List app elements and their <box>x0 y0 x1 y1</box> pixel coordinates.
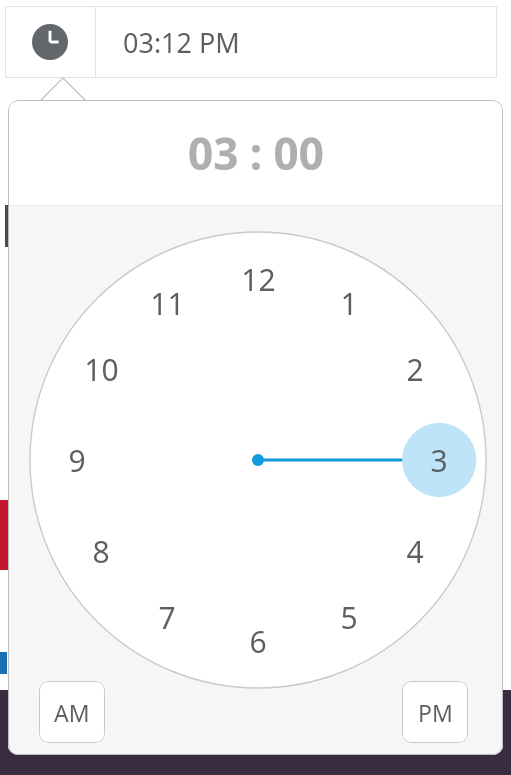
button[interactable]: Pick time <box>5 6 497 78</box>
staticText: 6 <box>249 621 267 662</box>
staticText: 3 <box>430 440 448 481</box>
staticText: 03:12 PM <box>123 24 240 61</box>
staticText: 2 <box>406 349 424 390</box>
button[interactable]: 11 <box>141 281 193 325</box>
staticText: 10 <box>84 349 119 390</box>
button[interactable]: 2 <box>389 347 441 391</box>
staticText: 03 : 00 <box>188 123 324 183</box>
other: Pick time <box>5 6 95 78</box>
button[interactable]: 9 <box>51 438 103 482</box>
staticText: PM <box>418 697 453 728</box>
button[interactable]: 8 <box>75 529 127 573</box>
button[interactable]: 1 <box>323 281 375 325</box>
staticText: 5 <box>340 597 358 638</box>
staticText: AM <box>54 697 90 728</box>
staticText: 1 <box>340 283 358 324</box>
staticText: 4 <box>406 531 424 572</box>
staticText: 8 <box>92 531 110 572</box>
button[interactable]: AM <box>39 681 105 743</box>
button[interactable]: 3 <box>413 438 465 482</box>
button[interactable]: 5 <box>323 595 375 639</box>
staticText: 12 <box>241 259 276 300</box>
button[interactable]: 4 <box>389 529 441 573</box>
button[interactable]: 10 <box>75 347 127 391</box>
button[interactable]: PM <box>402 681 468 743</box>
staticText: 9 <box>68 440 86 481</box>
button[interactable]: 6 <box>232 619 284 663</box>
button[interactable]: 12 <box>232 257 284 301</box>
button[interactable]: 7 <box>141 595 193 639</box>
staticText: 11 <box>150 283 185 324</box>
staticText: 7 <box>158 597 176 638</box>
